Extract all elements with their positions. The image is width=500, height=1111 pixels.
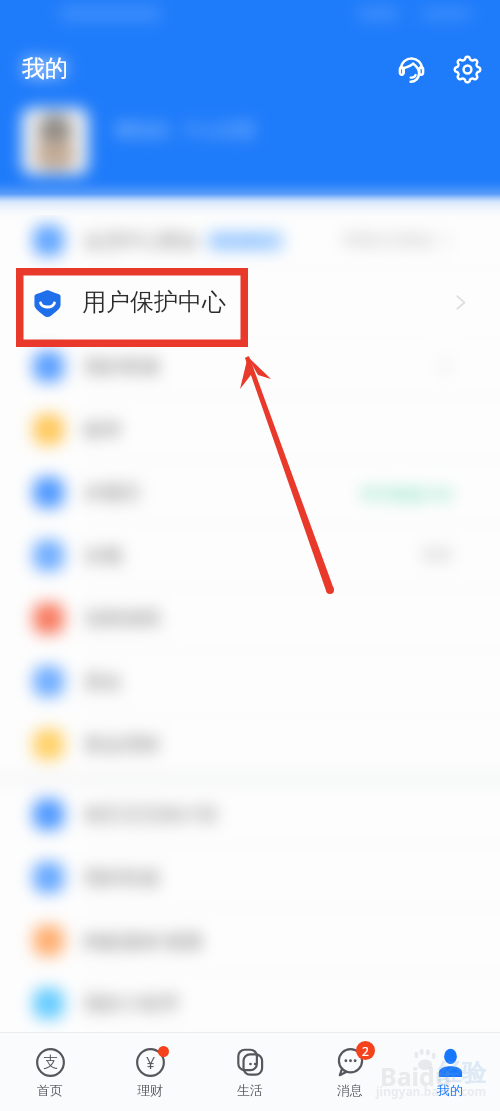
staticText: 生活 bbox=[237, 1082, 263, 1098]
button[interactable]: 基金 bbox=[0, 650, 500, 713]
staticText: ¥ bbox=[146, 1052, 156, 1074]
button[interactable]: 会员中心黄金 bbox=[0, 209, 500, 272]
staticText: 签到领积分 bbox=[213, 233, 278, 249]
staticText: 我的 bbox=[437, 1082, 463, 1098]
staticText: 账单 bbox=[84, 418, 122, 442]
button[interactable]: 我的小程序 bbox=[0, 972, 500, 1035]
button[interactable]: Customer service bbox=[392, 50, 430, 88]
button[interactable]: Settings bbox=[448, 50, 486, 88]
staticText: 我的 bbox=[22, 54, 68, 83]
staticText: 首页 bbox=[37, 1082, 63, 1098]
button[interactable]: 2 bbox=[300, 1032, 400, 1111]
button[interactable]: 黄金理财 bbox=[0, 713, 500, 776]
button[interactable]: 我的客服 bbox=[0, 335, 500, 398]
staticText: 我的快递 bbox=[84, 866, 160, 890]
button[interactable]: 用户保护中心 bbox=[0, 272, 500, 335]
button[interactable]: 余额 bbox=[0, 524, 500, 587]
button[interactable]: 余额宝 bbox=[0, 461, 500, 524]
staticText: 理财 bbox=[137, 1082, 163, 1098]
button[interactable]: 生活 bbox=[200, 1032, 300, 1111]
staticText: 基金 bbox=[84, 670, 122, 694]
button[interactable]: 用户保护中心 bbox=[0, 272, 500, 335]
staticText: 陈先生 · 个人主页 bbox=[116, 117, 257, 142]
staticText: 用户保护中心 bbox=[84, 292, 198, 316]
staticText: 我的客服 bbox=[84, 355, 160, 379]
staticText: 蚂蚁森林·能量 bbox=[84, 928, 204, 954]
button[interactable]: 蚂蚁森林·能量 bbox=[0, 909, 500, 972]
staticText: jingyan.baidu.com bbox=[376, 1083, 487, 1099]
button[interactable]: ¥ bbox=[100, 1032, 200, 1111]
staticText: 余额 bbox=[84, 544, 122, 568]
staticText: 用户保护中心 bbox=[82, 287, 226, 317]
staticText: 支 bbox=[43, 1053, 58, 1072]
staticText: 余额宝 bbox=[84, 481, 141, 505]
staticText: 相互宝互助计划 bbox=[84, 803, 217, 827]
button[interactable]: 相互宝互助计划 bbox=[0, 783, 500, 846]
staticText: Baidu bbox=[380, 1059, 452, 1093]
staticText: 我的 bbox=[22, 54, 68, 83]
button[interactable]: 陈先生 · 个人主页 bbox=[22, 108, 322, 175]
staticText: 我的小程序 bbox=[84, 992, 179, 1016]
staticText: 昨日收益0.68 bbox=[362, 483, 452, 503]
button[interactable]: 账单 bbox=[0, 398, 500, 461]
staticText: 经验 bbox=[438, 1058, 486, 1088]
button[interactable]: 我的 bbox=[400, 1032, 500, 1111]
button[interactable]: 支 bbox=[0, 1032, 100, 1111]
staticText: 黄金理财 bbox=[84, 733, 160, 757]
staticText: 花呗借呗 bbox=[84, 607, 160, 631]
staticText: 消息 bbox=[337, 1082, 363, 1098]
button[interactable]: 我的快递 bbox=[0, 846, 500, 909]
staticText: 会员中心黄金 bbox=[84, 229, 198, 253]
button[interactable]: 花呗借呗 bbox=[0, 587, 500, 650]
staticText: 2 bbox=[362, 1043, 369, 1059]
